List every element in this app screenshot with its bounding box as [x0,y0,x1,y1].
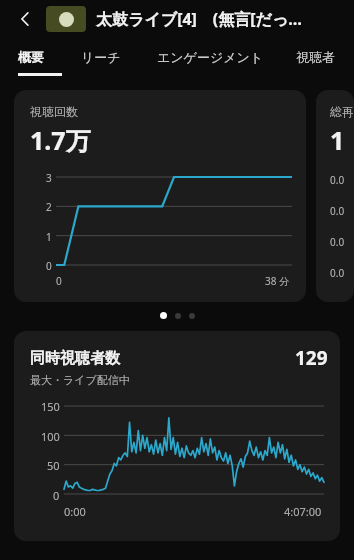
staticText: 総再 [330,104,354,119]
button[interactable]: 総再 [316,90,354,302]
staticText: 0:00 [64,504,86,519]
staticText: 1.7万 [30,123,91,157]
staticText: 4:07:00 [284,504,322,519]
staticText: 1 [46,230,52,242]
button[interactable]: 同時視聴者数 [14,331,340,541]
staticText: 視聴回数 [30,104,78,119]
button[interactable]: リーチ [62,38,140,76]
staticText: 0.0 [330,173,345,187]
staticText: 100 [41,429,60,442]
button[interactable]: 視聴回数 [14,90,306,302]
button[interactable]: 戻る [6,0,44,38]
staticText: 150 [41,399,60,412]
staticText: 0.0 [330,235,345,249]
staticText: 38 分 [265,274,290,288]
staticText: 太鼓ライブ[4] (無言[だっ… [96,8,303,30]
staticText: 50 [47,458,60,471]
button[interactable]: 視聴者 [280,38,350,76]
staticText: エンゲージメント [157,49,264,65]
staticText: 最大・ライブ配信中 [30,373,130,387]
staticText: 2 [46,200,52,212]
button[interactable]: ページ 1 [160,312,167,319]
staticText: 同時視聴者数 [30,349,120,368]
staticText: リーチ [81,49,121,65]
staticText: 3 [46,171,52,183]
staticText: 0.0 [330,204,345,218]
staticText: 概要 [18,49,44,65]
staticText: 18 [330,123,354,157]
button[interactable]: ページ 2 [175,313,181,319]
staticText: 0 [56,274,62,288]
staticText: 視聴者 [296,49,335,65]
staticText: 0.0 [330,266,345,280]
staticText: 0 [53,488,60,501]
staticText: 129 [295,345,328,371]
button[interactable]: 概要 [0,38,62,76]
button[interactable]: ページ 3 [189,313,195,319]
button[interactable]: エンゲージメント [140,38,280,76]
staticText: 0 [46,259,52,271]
